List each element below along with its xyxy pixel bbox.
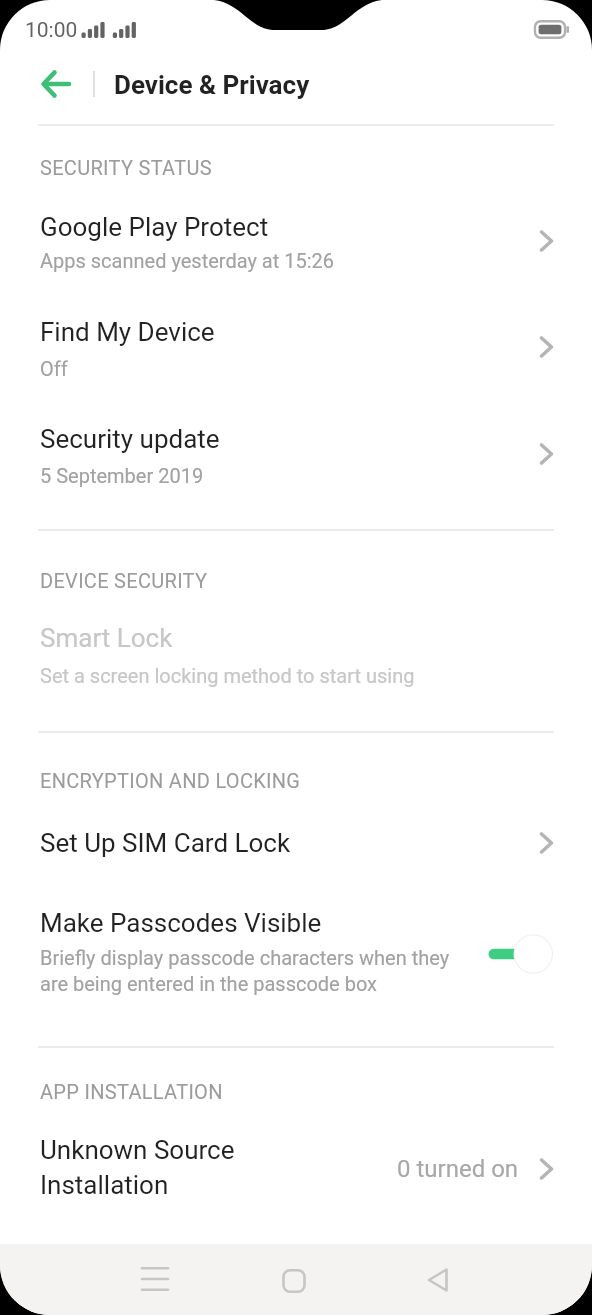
staticText: Briefly display passcode characters when…	[40, 946, 452, 996]
staticText: 0 turned on	[397, 1155, 519, 1183]
staticText: Make Passcodes Visible	[40, 908, 322, 938]
staticText: Set a screen locking method to start usi…	[40, 664, 415, 687]
staticText: Unknown Source Installation	[40, 1135, 235, 1200]
staticText: SECURITY STATUS	[40, 156, 212, 179]
staticText: Apps scanned yesterday at 15:26	[40, 249, 335, 272]
button[interactable]	[131, 1255, 179, 1303]
button[interactable]	[414, 1256, 462, 1304]
staticText: Device & Privacy	[114, 70, 310, 100]
button[interactable]: Security update	[0, 418, 592, 496]
button[interactable]	[270, 1257, 318, 1305]
button[interactable]: Make Passcodes Visible	[0, 901, 592, 1001]
staticText: Off	[40, 357, 68, 380]
staticText: DEVICE SECURITY	[40, 569, 208, 592]
button[interactable]: Set Up SIM Card Lock	[0, 823, 592, 871]
staticText: 5 September 2019	[40, 464, 204, 487]
staticText: Security update	[40, 424, 220, 454]
staticText: Google Play Protect	[40, 212, 269, 242]
staticText: Find My Device	[40, 317, 215, 347]
staticText: 10:00	[25, 18, 78, 43]
button[interactable]: Google Play Protect	[0, 204, 592, 282]
staticText: APP INSTALLATION	[40, 1080, 223, 1103]
staticText: ENCRYPTION AND LOCKING	[40, 769, 301, 792]
button[interactable]	[33, 62, 79, 106]
staticText: Set Up SIM Card Lock	[40, 828, 291, 858]
button[interactable]: Unknown Source Installation	[0, 1128, 592, 1213]
button[interactable]: Find My Device	[0, 311, 592, 389]
staticText: Smart Lock	[40, 623, 173, 653]
